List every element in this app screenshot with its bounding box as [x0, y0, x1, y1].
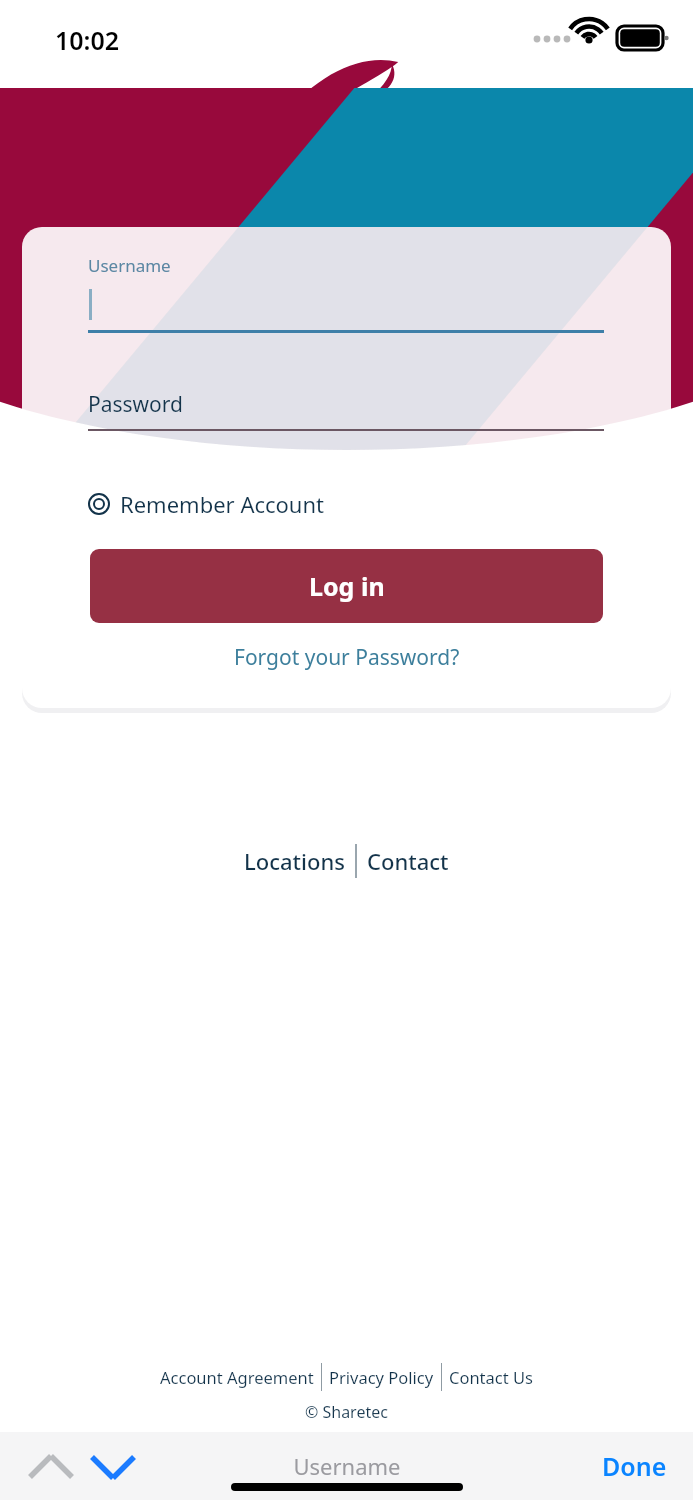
button[interactable]: Log in: [90, 549, 603, 623]
staticText: © Sharetec: [305, 1401, 388, 1423]
button[interactable]: Forgot your Password?: [226, 639, 468, 676]
staticText: Contact: [367, 846, 449, 876]
button[interactable]: Locations: [234, 840, 355, 882]
staticText: Locations: [244, 846, 345, 876]
button[interactable]: Contact: [357, 840, 459, 882]
button[interactable]: Done: [592, 1443, 677, 1489]
button[interactable]: Previous field: [24, 1440, 78, 1494]
staticText: Forgot your Password?: [234, 643, 460, 672]
staticText: Username: [88, 254, 171, 277]
staticText: Password: [88, 390, 183, 419]
staticText: Account Agreement: [160, 1366, 314, 1388]
staticText: Contact Us: [449, 1366, 533, 1388]
button[interactable]: Account Agreement: [153, 1362, 321, 1392]
staticText: Username: [293, 1451, 401, 1481]
button[interactable]: Remember Account: [84, 485, 329, 523]
staticText: Log in: [309, 569, 385, 603]
staticText: Privacy Policy: [329, 1366, 434, 1388]
button[interactable]: Privacy Policy: [322, 1362, 441, 1392]
staticText: Remember Account: [120, 489, 325, 519]
button[interactable]: Contact Us: [442, 1362, 540, 1392]
staticText: Done: [602, 1449, 667, 1483]
button[interactable]: Next field: [86, 1440, 140, 1494]
staticText: dfcu: [319, 89, 402, 141]
staticText: 10:02: [55, 23, 120, 57]
